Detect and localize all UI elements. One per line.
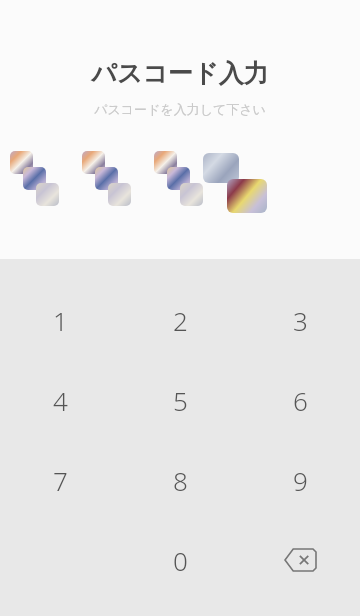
button[interactable]: 9 bbox=[240, 440, 360, 520]
staticText: パスコード入力 bbox=[91, 58, 269, 89]
button[interactable]: Delete bbox=[240, 520, 360, 600]
staticText: 7 bbox=[53, 463, 68, 498]
staticText: パスコードを入力して下さい bbox=[94, 101, 266, 117]
button[interactable]: 8 bbox=[120, 440, 240, 520]
button[interactable]: 5 bbox=[120, 360, 240, 440]
button[interactable]: 3 bbox=[240, 280, 360, 360]
staticText: 2 bbox=[173, 303, 188, 338]
staticText: 5 bbox=[173, 383, 188, 418]
staticText: 1 bbox=[53, 303, 68, 338]
button[interactable]: 2 bbox=[120, 280, 240, 360]
button[interactable]: 1 bbox=[0, 280, 120, 360]
button[interactable]: 6 bbox=[240, 360, 360, 440]
staticText: 9 bbox=[293, 463, 308, 498]
staticText: 8 bbox=[173, 463, 188, 498]
staticText: 4 bbox=[53, 383, 68, 418]
staticText: 3 bbox=[293, 303, 308, 338]
button[interactable]: 0 bbox=[120, 520, 240, 600]
staticText: 0 bbox=[173, 543, 188, 578]
button[interactable]: 7 bbox=[0, 440, 120, 520]
button[interactable]: 4 bbox=[0, 360, 120, 440]
staticText: 6 bbox=[293, 383, 308, 418]
